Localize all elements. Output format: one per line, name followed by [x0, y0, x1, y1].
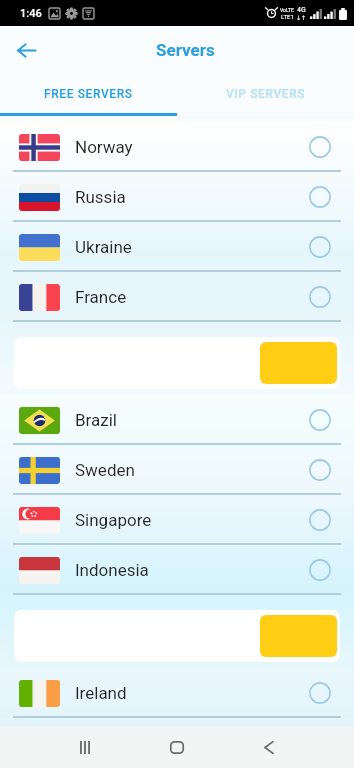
button[interactable]: Back: [7, 31, 45, 69]
button[interactable]: FREE SERVERS: [0, 74, 177, 113]
staticText: Singapore: [75, 510, 152, 530]
button[interactable]: Home: [151, 727, 203, 768]
staticText: Ireland: [75, 683, 127, 703]
button[interactable]: Recent apps: [59, 727, 111, 768]
button[interactable]: [14, 337, 340, 389]
button[interactable]: Brazil: [0, 395, 354, 445]
staticText: Sweden: [75, 460, 135, 480]
staticText: VoLTE: [280, 7, 294, 13]
staticText: ↓↑: [296, 14, 307, 21]
staticText: Indonesia: [75, 560, 149, 580]
button[interactable]: VIP SERVERS: [177, 74, 354, 113]
staticText: 1:46: [20, 7, 42, 20]
staticText: LTE1: [281, 13, 294, 20]
button[interactable]: Ukraine: [0, 222, 354, 272]
staticText: Brazil: [75, 410, 117, 430]
button[interactable]: [14, 610, 340, 662]
staticText: 4G: [297, 6, 306, 14]
button[interactable]: Russia: [0, 172, 354, 222]
button[interactable]: Singapore: [0, 495, 354, 545]
button[interactable]: Indonesia: [0, 545, 354, 595]
button[interactable]: Ireland: [0, 668, 354, 718]
button[interactable]: Sweden: [0, 445, 354, 495]
staticText: Servers: [156, 40, 215, 60]
button[interactable]: France: [0, 272, 354, 322]
staticText: Ukraine: [75, 237, 132, 257]
staticText: France: [75, 287, 127, 307]
button[interactable]: Norway: [0, 122, 354, 172]
button[interactable]: Back: [243, 727, 295, 768]
staticText: Norway: [75, 137, 133, 157]
staticText: FREE SERVERS: [44, 87, 133, 101]
staticText: VIP SERVERS: [226, 87, 306, 101]
staticText: Russia: [75, 187, 126, 207]
